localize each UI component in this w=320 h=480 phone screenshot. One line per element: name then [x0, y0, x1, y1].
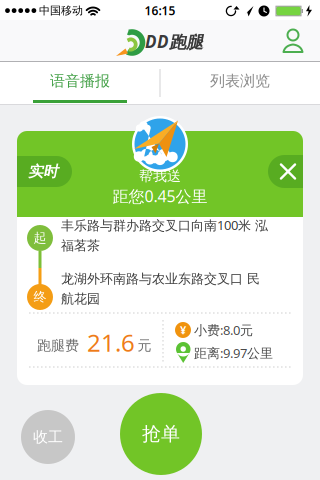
- staticText: 语音播报: [50, 72, 110, 90]
- staticText: 元: [137, 337, 151, 354]
- staticText: ¥: [180, 323, 186, 337]
- staticText: 实时: [28, 162, 58, 181]
- staticText: 收工: [33, 428, 63, 446]
- staticText: 距离:9.97公里: [194, 344, 273, 362]
- staticText: 16:15: [144, 2, 175, 18]
- button[interactable]: 个人中心: [273, 22, 313, 62]
- staticText: 跑腿费: [37, 337, 79, 354]
- button[interactable]: 收工: [21, 410, 75, 464]
- staticText: 丰乐路与群办路交叉口向南100米 泓 福茗茶: [61, 216, 268, 254]
- staticText: 起: [33, 230, 46, 246]
- button[interactable]: 关闭: [268, 155, 303, 188]
- staticText: 小费:8.0元: [194, 321, 253, 339]
- staticText: 龙湖外环南路与农业东路交叉口 民 航花园: [61, 271, 260, 307]
- staticText: 距您0.45公里: [112, 185, 207, 207]
- staticText: 抢单: [142, 422, 180, 446]
- staticText: 终: [33, 289, 46, 305]
- staticText: DD跑腿: [145, 30, 203, 53]
- staticText: 21.6: [87, 327, 135, 358]
- staticText: 中国移动: [39, 4, 83, 17]
- button[interactable]: 语音播报: [0, 62, 159, 100]
- button[interactable]: 抢单: [120, 393, 202, 475]
- staticText: 列表浏览: [210, 72, 270, 90]
- button[interactable]: 列表浏览: [160, 62, 319, 100]
- staticText: 帮我送: [139, 167, 181, 185]
